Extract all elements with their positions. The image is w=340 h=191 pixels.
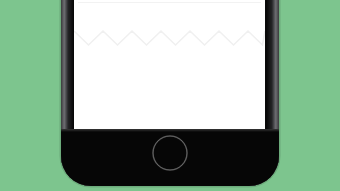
- button[interactable]: Phone mockup: [0, 0, 340, 191]
